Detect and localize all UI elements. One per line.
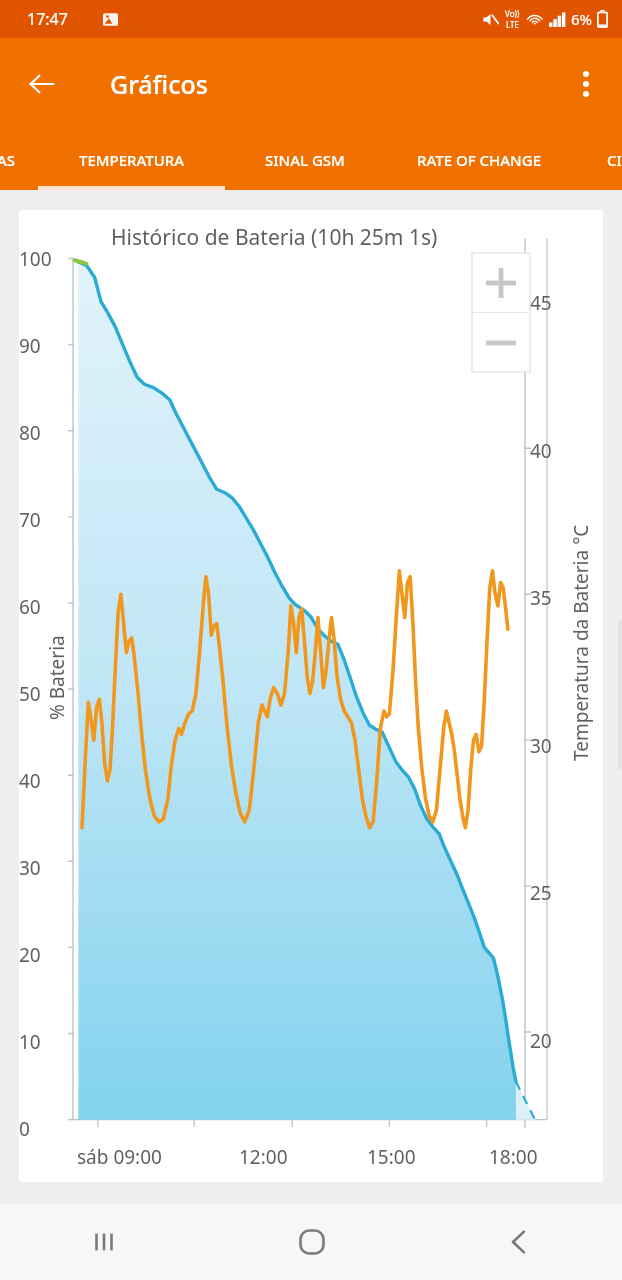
- button[interactable]: Back: [16, 58, 68, 110]
- staticText: sáb 09:00: [77, 1144, 162, 1170]
- staticText: AS: [0, 150, 16, 170]
- staticText: LTE: [506, 19, 519, 30]
- staticText: 6%: [571, 9, 593, 29]
- button[interactable]: More options: [560, 58, 612, 110]
- staticText: 45: [530, 290, 552, 316]
- button[interactable]: Zoom in: [472, 253, 530, 312]
- staticText: 50: [19, 681, 63, 707]
- button[interactable]: AS: [0, 130, 26, 190]
- button[interactable]: Zoom out: [472, 313, 530, 372]
- staticText: 70: [19, 507, 63, 533]
- staticText: 90: [19, 333, 63, 359]
- button[interactable]: Home: [208, 1204, 415, 1280]
- staticText: 60: [19, 594, 63, 620]
- button[interactable]: Recent apps: [0, 1204, 208, 1280]
- staticText: 30: [19, 855, 63, 881]
- staticText: 0: [19, 1116, 63, 1142]
- staticText: 25: [530, 880, 552, 906]
- staticText: 30: [530, 733, 552, 759]
- staticText: RATE OF CHANGE: [417, 150, 541, 170]
- staticText: SINAL GSM: [265, 150, 345, 170]
- staticText: 20: [530, 1028, 552, 1054]
- staticText: 35: [530, 585, 552, 611]
- staticText: 17:47: [27, 8, 68, 30]
- staticText: 80: [19, 420, 63, 446]
- button[interactable]: Histórico de Bateria (10h 25m 1s): [19, 210, 603, 1182]
- staticText: 40: [530, 438, 552, 464]
- staticText: 15:00: [367, 1144, 416, 1170]
- staticText: Temperatura da Bateria °C: [568, 524, 594, 761]
- staticText: 100: [19, 246, 63, 272]
- staticText: Gráficos: [110, 67, 208, 101]
- staticText: Vo)): [505, 8, 520, 19]
- staticText: 12:00: [239, 1144, 288, 1170]
- staticText: 18:00: [489, 1144, 538, 1170]
- staticText: 10: [19, 1029, 63, 1055]
- staticText: Histórico de Bateria (10h 25m 1s): [111, 223, 438, 252]
- button[interactable]: TEMPERATURA: [38, 130, 225, 190]
- button[interactable]: SINAL GSM: [232, 130, 377, 190]
- button[interactable]: CI: [594, 130, 622, 190]
- staticText: 20: [19, 942, 63, 968]
- staticText: 40: [19, 768, 63, 794]
- staticText: % Bateria: [44, 635, 70, 720]
- staticText: CI: [607, 150, 622, 170]
- button[interactable]: Back: [415, 1204, 622, 1280]
- staticText: TEMPERATURA: [79, 150, 185, 170]
- button[interactable]: RATE OF CHANGE: [383, 130, 575, 190]
